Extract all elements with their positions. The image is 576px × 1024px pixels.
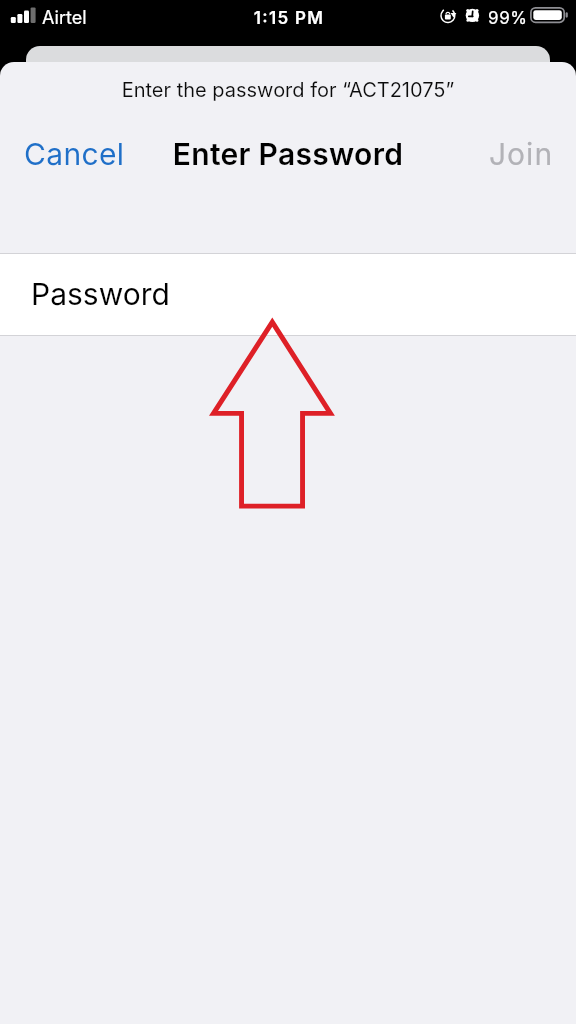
- staticText: Enter Password: [0, 136, 576, 172]
- button[interactable]: Password: [0, 254, 576, 335]
- staticText: 1:15 PM: [1, 8, 576, 29]
- staticText: Password: [31, 276, 170, 312]
- staticText: Join: [489, 136, 554, 172]
- staticText: Enter the password for “ACT21075”: [0, 78, 576, 102]
- button[interactable]: Cancel: [0, 127, 149, 181]
- staticText: 99%: [488, 8, 528, 29]
- button[interactable]: Join: [465, 127, 576, 181]
- staticText: Airtel: [42, 7, 87, 29]
- staticText: Cancel: [24, 136, 125, 172]
- other: Annotation arrow pointing to password fi…: [0, 0, 576, 1024]
